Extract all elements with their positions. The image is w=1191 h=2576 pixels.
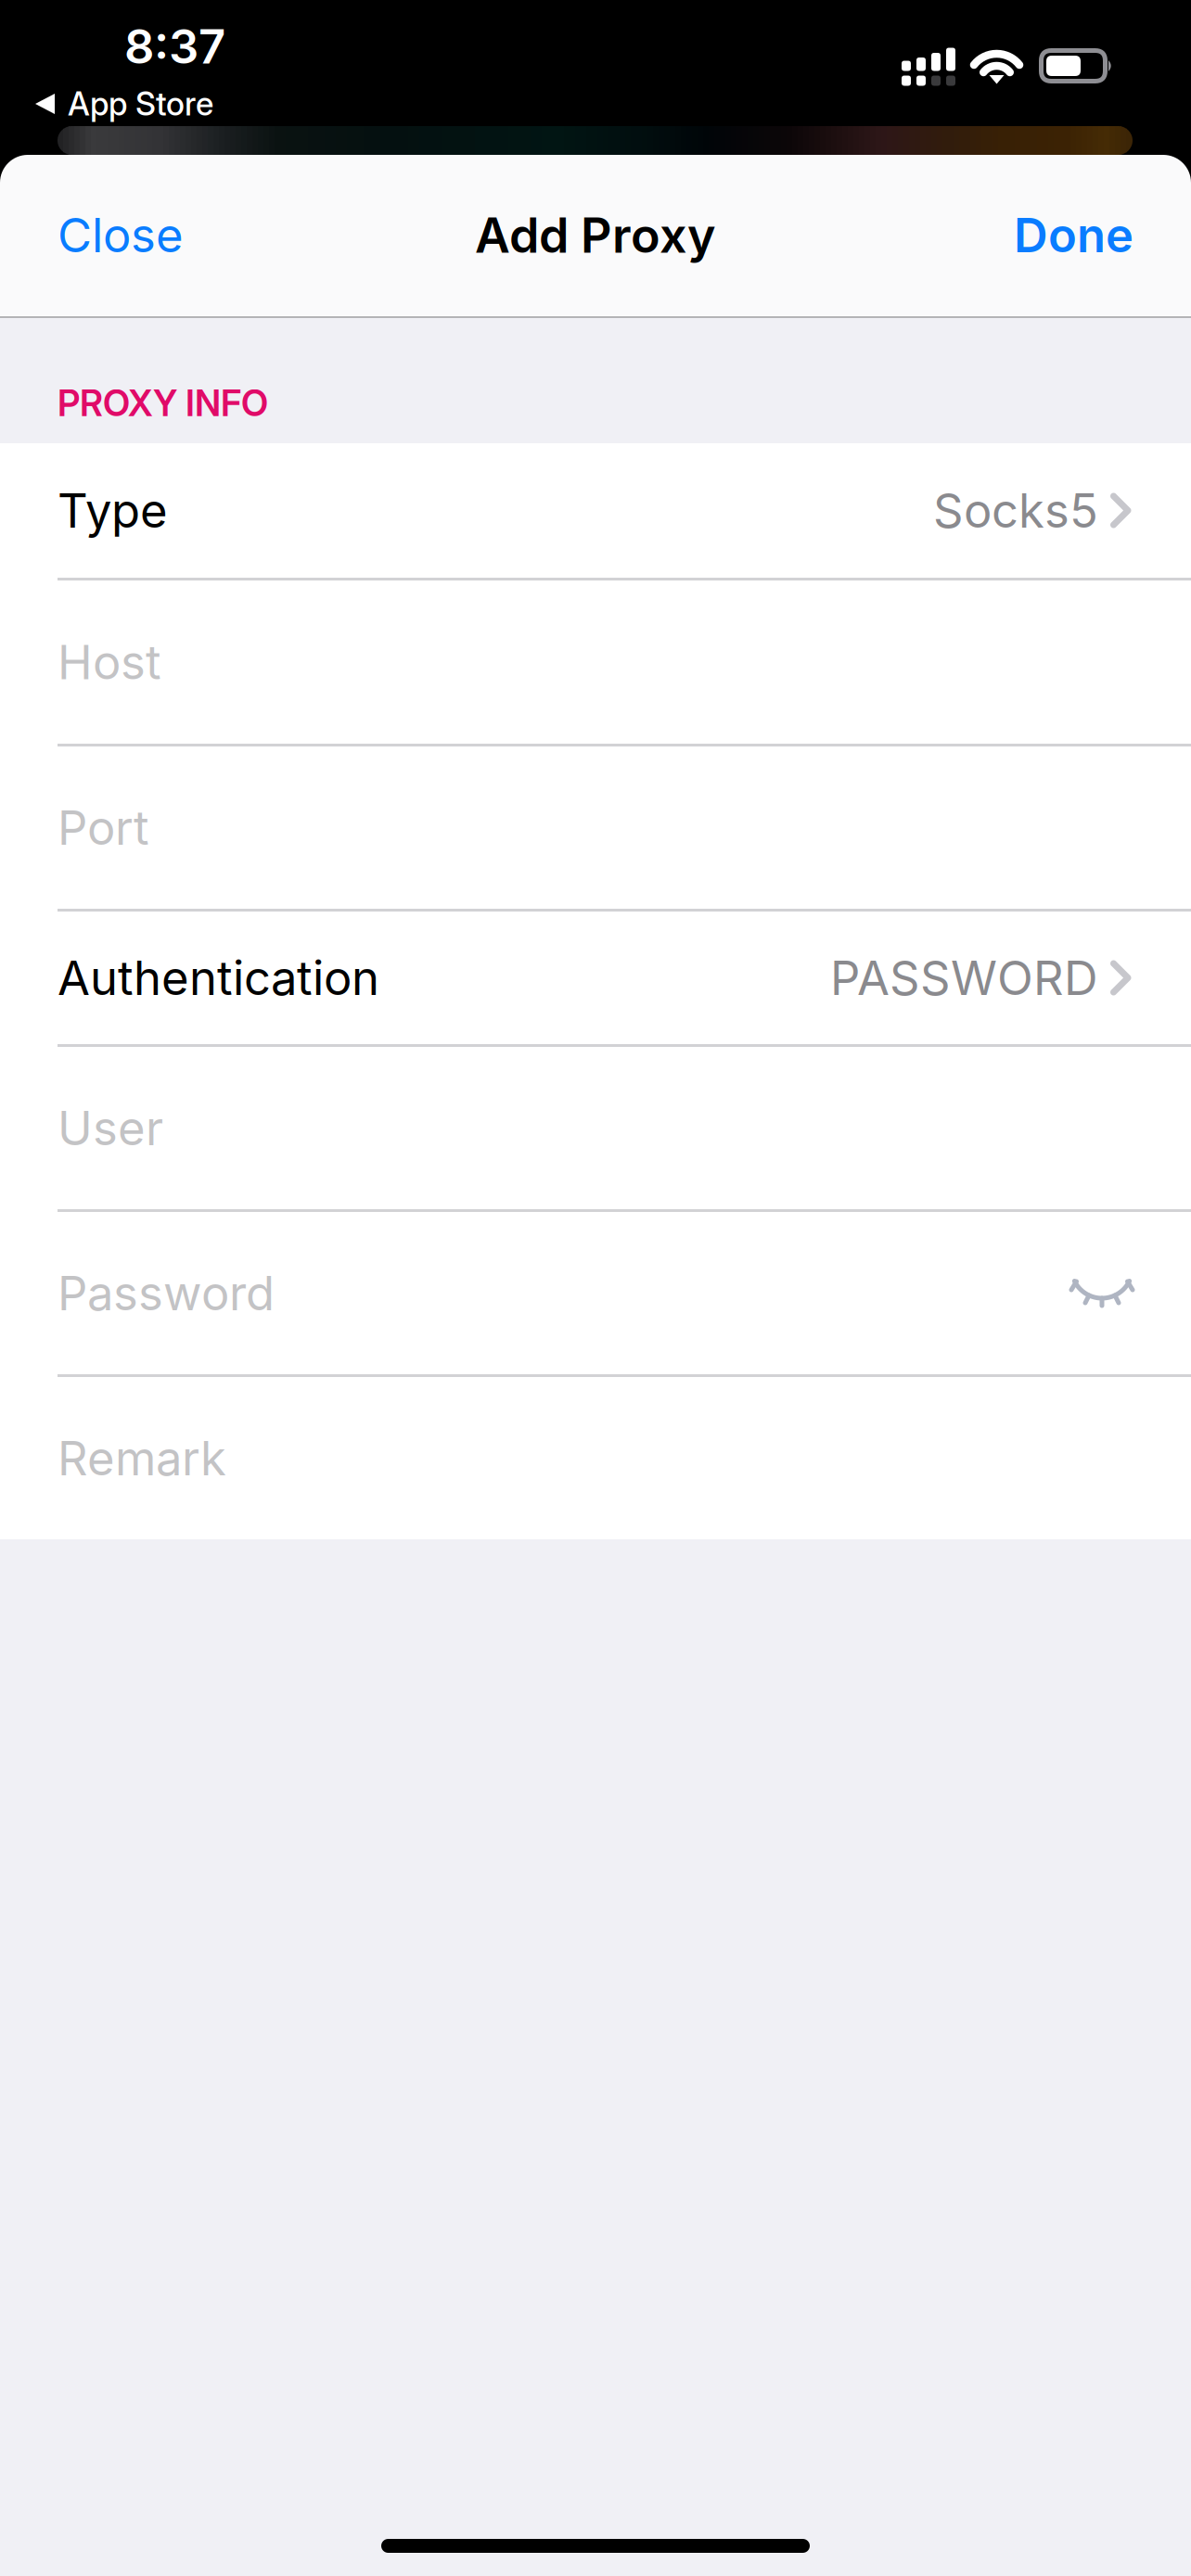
button[interactable]: Authentication <box>0 912 1191 1044</box>
staticText: Close <box>58 207 184 263</box>
button[interactable]: Close <box>0 155 211 315</box>
button[interactable]: User <box>0 1047 1191 1209</box>
staticText: PROXY INFO <box>58 381 268 425</box>
staticText: PASSWORD <box>830 949 1098 1006</box>
staticText: User <box>58 1100 163 1156</box>
staticText: Host <box>58 634 161 690</box>
button[interactable]: Remark <box>0 1377 1191 1539</box>
staticText: 8:37 <box>124 18 225 75</box>
staticText: Authentication <box>58 949 379 1006</box>
staticText: Socks5 <box>933 482 1098 539</box>
button[interactable]: Port <box>0 746 1191 909</box>
staticText: App Store <box>68 84 213 123</box>
button[interactable]: Host <box>0 580 1191 744</box>
staticText: Type <box>58 482 168 539</box>
button[interactable]: Show password <box>1065 1271 1139 1315</box>
staticText: Add Proxy <box>475 206 716 264</box>
staticText: Password <box>58 1265 275 1321</box>
staticText: Remark <box>58 1430 226 1487</box>
button[interactable]: Type <box>0 443 1191 578</box>
button[interactable]: Done <box>986 155 1191 315</box>
staticText: Done <box>1014 207 1133 263</box>
staticText: Port <box>58 799 149 856</box>
